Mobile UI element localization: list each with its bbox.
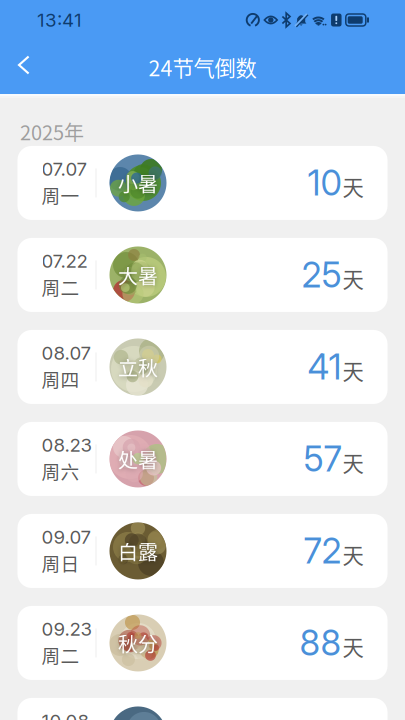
- staticText: 周六: [41, 457, 79, 484]
- staticText: 周二: [41, 273, 79, 300]
- staticText: 天: [342, 539, 363, 570]
- staticText: 07.07: [41, 158, 87, 180]
- staticText: 10.08: [41, 710, 89, 720]
- staticText: 立秋: [118, 352, 158, 381]
- staticText: 41: [307, 346, 341, 388]
- staticText: 08.23: [41, 434, 92, 456]
- staticText: 09.23: [41, 618, 92, 640]
- staticText: 周四: [41, 365, 79, 392]
- staticText: 天: [342, 447, 363, 478]
- staticText: 天: [342, 263, 363, 294]
- staticText: 秋分: [118, 628, 158, 657]
- button[interactable]: 08.23: [17, 422, 387, 496]
- staticText: 白露: [118, 536, 158, 565]
- staticText: 08.07: [41, 342, 91, 364]
- staticText: 2025年: [20, 117, 84, 146]
- staticText: 大暑: [118, 260, 158, 289]
- staticText: 周日: [41, 549, 79, 576]
- button[interactable]: 07.22: [17, 238, 387, 312]
- staticText: 周二: [41, 641, 79, 668]
- staticText: 13:41: [37, 9, 82, 31]
- button[interactable]: 10.08: [17, 698, 387, 720]
- staticText: 天: [342, 355, 363, 386]
- staticText: 25: [301, 254, 341, 296]
- staticText: 小暑: [118, 168, 158, 197]
- staticText: 周一: [41, 181, 79, 208]
- staticText: 天: [342, 171, 363, 202]
- staticText: 处暑: [118, 444, 158, 473]
- staticText: 24节气倒数: [148, 52, 256, 82]
- staticText: 07.22: [41, 250, 87, 272]
- staticText: 09.07: [41, 526, 91, 548]
- button[interactable]: 09.23: [17, 606, 387, 680]
- staticText: 88: [299, 622, 341, 664]
- staticText: 72: [303, 530, 341, 572]
- button[interactable]: 08.07: [17, 330, 387, 404]
- staticText: 天: [342, 631, 363, 662]
- button[interactable]: Back: [5, 44, 43, 90]
- button[interactable]: 09.07: [17, 514, 387, 588]
- button[interactable]: 07.07: [17, 146, 387, 220]
- staticText: 57: [303, 438, 341, 480]
- staticText: 10: [307, 162, 341, 204]
